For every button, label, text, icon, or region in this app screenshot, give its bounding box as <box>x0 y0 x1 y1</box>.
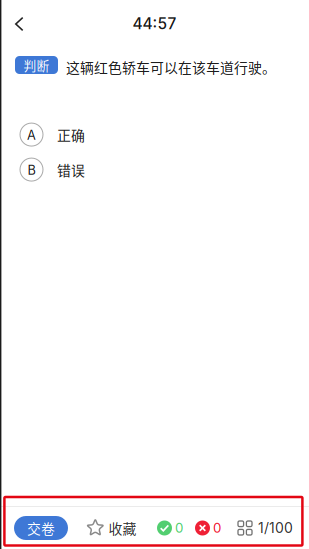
staticText: B <box>27 162 35 178</box>
button[interactable]: Back <box>0 0 44 44</box>
button[interactable]: A <box>0 117 309 152</box>
staticText: 1/100 <box>258 519 293 536</box>
button[interactable]: B <box>0 152 309 187</box>
button[interactable]: 交卷 <box>14 516 68 540</box>
staticText: 44:57 <box>132 14 176 33</box>
staticText: 错误 <box>57 159 85 180</box>
staticText: 正确 <box>57 124 85 145</box>
button[interactable]: 1/100 <box>238 511 293 545</box>
staticText: 交卷 <box>27 518 55 538</box>
button[interactable]: 收藏 <box>86 511 137 545</box>
staticText: 0 <box>213 520 221 536</box>
staticText: 0 <box>175 520 183 536</box>
staticText: 收藏 <box>109 518 137 538</box>
staticText: A <box>27 127 36 143</box>
staticText: 判断 <box>23 56 49 74</box>
staticText: 这辆红色轿车可以在该车道行驶。 <box>66 57 276 77</box>
